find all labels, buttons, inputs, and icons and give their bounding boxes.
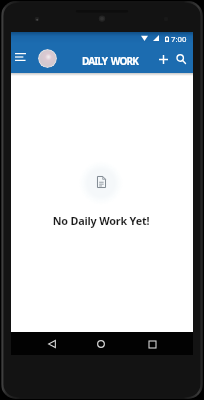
button[interactable]: Profile [38, 49, 57, 68]
button[interactable]: Recent apps [144, 336, 160, 352]
button[interactable]: Add [153, 49, 173, 69]
staticText: 7:00 [171, 34, 187, 45]
button[interactable]: Home [93, 336, 109, 352]
button[interactable]: Search [171, 49, 191, 69]
staticText: No Daily Work Yet! [10, 213, 192, 228]
staticText: DAILY WORK [82, 54, 139, 68]
button[interactable]: Back [44, 336, 60, 352]
button[interactable]: Open navigation menu [11, 48, 30, 68]
